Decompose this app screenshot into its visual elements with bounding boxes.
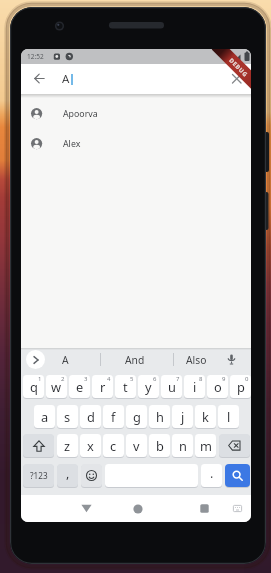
staticText: y: [145, 378, 152, 395]
button[interactable]: Also: [176, 350, 216, 369]
staticText: e: [76, 378, 84, 395]
button[interactable]: q: [23, 375, 44, 398]
button[interactable]: [225, 464, 250, 487]
staticText: p: [237, 378, 245, 395]
button[interactable]: ?123: [23, 464, 54, 487]
button[interactable]: j: [172, 405, 193, 428]
staticText: g: [133, 408, 141, 425]
staticText: a: [41, 408, 49, 425]
staticText: q: [30, 378, 38, 395]
button[interactable]: p: [230, 375, 251, 398]
staticText: h: [156, 408, 164, 425]
staticText: And: [125, 353, 145, 367]
staticText: .: [210, 465, 214, 482]
staticText: c: [110, 437, 117, 454]
staticText: z: [64, 437, 71, 454]
button[interactable]: a: [34, 405, 55, 428]
button[interactable]: n: [172, 434, 193, 457]
button[interactable]: u: [161, 375, 182, 398]
staticText: v: [133, 437, 140, 454]
button[interactable]: r: [92, 375, 113, 398]
button[interactable]: k: [195, 405, 216, 428]
staticText: 0: [245, 375, 249, 383]
button[interactable]: And: [115, 350, 155, 369]
staticText: b: [156, 437, 164, 454]
staticText: i: [193, 378, 197, 395]
button[interactable]: h: [149, 405, 170, 428]
button[interactable]: i: [184, 375, 205, 398]
staticText: k: [202, 408, 209, 425]
button[interactable]: o: [207, 375, 228, 398]
button[interactable]: t: [115, 375, 136, 398]
staticText: 9: [222, 375, 226, 383]
staticText: 3: [84, 375, 88, 383]
button[interactable]: [25, 64, 54, 93]
button[interactable]: z: [57, 434, 78, 457]
button[interactable]: b: [149, 434, 170, 457]
button[interactable]: d: [80, 405, 101, 428]
staticText: 6: [153, 375, 157, 383]
button[interactable]: .: [201, 464, 222, 487]
button[interactable]: l: [218, 405, 239, 428]
staticText: 2: [61, 375, 65, 383]
button[interactable]: c: [103, 434, 124, 457]
staticText: m: [200, 437, 212, 454]
button[interactable]: s: [57, 405, 78, 428]
button[interactable]: [81, 464, 102, 487]
staticText: x: [87, 437, 94, 454]
staticText: 1: [38, 375, 42, 383]
staticText: ,: [66, 465, 70, 482]
staticText: n: [179, 437, 187, 454]
button[interactable]: [123, 495, 153, 522]
staticText: t: [123, 378, 128, 395]
staticText: r: [100, 378, 106, 395]
button[interactable]: [222, 350, 241, 369]
staticText: f: [111, 408, 116, 425]
button[interactable]: A: [46, 350, 84, 369]
button[interactable]: f: [103, 405, 124, 428]
staticText: u: [168, 378, 176, 395]
staticText: Also: [186, 353, 207, 367]
button[interactable]: v: [126, 434, 147, 457]
staticText: A: [62, 353, 69, 367]
button[interactable]: [26, 350, 45, 369]
staticText: ?123: [30, 470, 48, 481]
staticText: 8: [199, 375, 203, 383]
button[interactable]: x: [80, 434, 101, 457]
button[interactable]: [71, 495, 101, 522]
staticText: A: [62, 71, 70, 87]
staticText: DEBUG: [227, 56, 250, 79]
staticText: l: [227, 408, 231, 425]
staticText: w: [51, 378, 62, 395]
button[interactable]: e: [69, 375, 90, 398]
staticText: 7: [176, 375, 180, 383]
button[interactable]: [222, 64, 251, 93]
staticText: s: [64, 408, 71, 425]
button[interactable]: [226, 495, 248, 522]
staticText: j: [181, 408, 185, 425]
staticText: 4: [107, 375, 111, 383]
staticText: Apoorva: [63, 108, 98, 120]
button[interactable]: m: [195, 434, 216, 457]
staticText: 12:52: [27, 52, 44, 61]
button[interactable]: w: [46, 375, 67, 398]
button[interactable]: [23, 434, 54, 457]
staticText: o: [214, 378, 222, 395]
button[interactable]: y: [138, 375, 159, 398]
button[interactable]: [189, 495, 219, 522]
staticText: d: [87, 408, 95, 425]
button[interactable]: g: [126, 405, 147, 428]
button[interactable]: Apoorva: [21, 99, 251, 129]
button[interactable]: ,: [57, 464, 78, 487]
button[interactable]: Alex: [21, 129, 251, 159]
staticText: 5: [130, 375, 134, 383]
staticText: Alex: [63, 138, 81, 150]
button[interactable]: [219, 434, 250, 457]
